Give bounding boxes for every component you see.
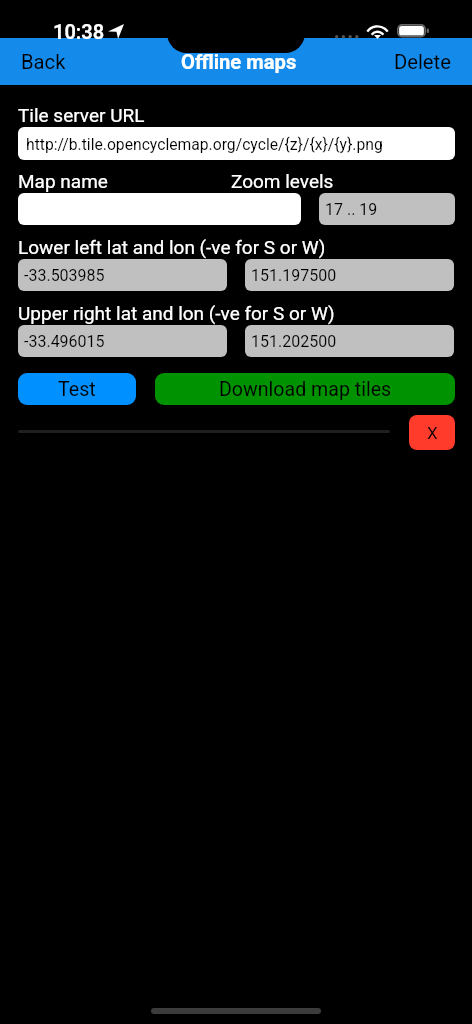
staticText: Offline maps xyxy=(181,50,297,74)
button[interactable]: Download map tiles xyxy=(155,373,455,405)
button[interactable]: 151.197500 xyxy=(245,259,454,291)
button[interactable]: -33.503985 xyxy=(18,259,227,291)
staticText: Delete xyxy=(394,50,451,74)
button[interactable]: Delete xyxy=(381,38,464,85)
button[interactable]: 17 .. 19 xyxy=(319,193,455,225)
button[interactable]: http://b.tile.opencyclemap.org/cycle/{z}… xyxy=(18,127,455,160)
staticText: Zoom levels xyxy=(231,170,334,192)
button[interactable] xyxy=(18,193,301,225)
staticText: X xyxy=(427,423,438,443)
staticText: Download map tiles xyxy=(219,378,392,401)
button[interactable]: Cancel download xyxy=(409,415,455,450)
button[interactable]: Test xyxy=(18,373,136,405)
staticText: Upper right lat and lon (-ve for S or W) xyxy=(18,302,335,324)
staticText: -33.503985 xyxy=(24,266,105,285)
button[interactable]: 151.202500 xyxy=(245,325,454,357)
button[interactable]: Back xyxy=(8,38,79,85)
staticText: 17 .. 19 xyxy=(325,200,378,219)
staticText: 151.202500 xyxy=(251,332,337,351)
staticText: 10:38 xyxy=(53,20,105,43)
staticText: -33.496015 xyxy=(24,332,105,351)
staticText: Map name xyxy=(18,170,108,192)
staticText: Test xyxy=(58,378,96,401)
staticText: Back xyxy=(21,50,66,74)
staticText: http://b.tile.opencyclemap.org/cycle/{z}… xyxy=(26,135,383,153)
staticText: Lower left lat and lon (-ve for S or W) xyxy=(18,236,326,258)
button[interactable]: -33.496015 xyxy=(18,325,227,357)
staticText: 151.197500 xyxy=(251,266,337,285)
staticText: Tile server URL xyxy=(18,104,145,126)
